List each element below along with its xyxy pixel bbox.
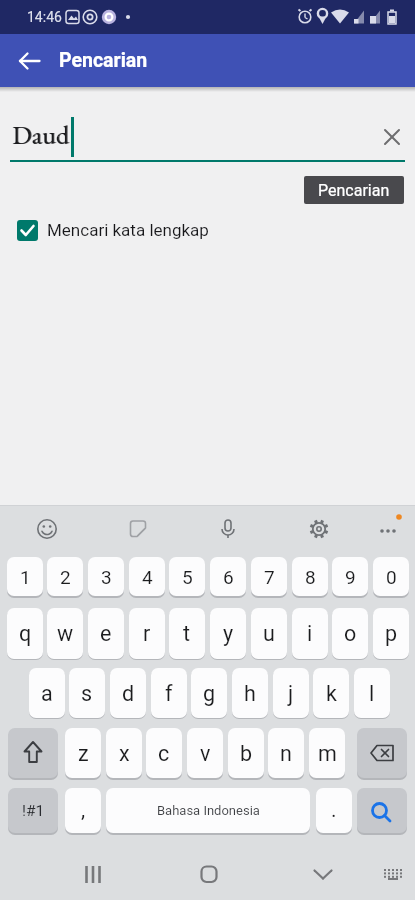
button[interactable]: 0: [373, 557, 409, 596]
button[interactable]: [124, 515, 152, 543]
button[interactable]: a: [29, 668, 65, 718]
button[interactable]: [305, 515, 333, 543]
staticText: w: [57, 621, 74, 646]
button[interactable]: [10, 44, 48, 78]
button[interactable]: x: [106, 728, 142, 778]
button[interactable]: y: [210, 608, 246, 659]
button[interactable]: !#1: [8, 788, 58, 833]
staticText: 8: [305, 566, 316, 588]
button[interactable]: w: [47, 608, 83, 659]
button[interactable]: v: [187, 728, 223, 778]
button[interactable]: n: [268, 728, 304, 778]
button[interactable]: q: [7, 608, 43, 659]
button[interactable]: [357, 788, 407, 833]
staticText: o: [344, 621, 357, 646]
staticText: n: [280, 741, 292, 766]
staticText: Daud: [12, 118, 69, 152]
button[interactable]: b: [228, 728, 264, 778]
staticText: 1: [20, 566, 31, 588]
button[interactable]: 5: [169, 557, 205, 596]
button[interactable]: j: [273, 668, 309, 718]
button[interactable]: 6: [210, 557, 246, 596]
staticText: .: [331, 798, 337, 823]
button[interactable]: r: [129, 608, 165, 659]
staticText: 2: [60, 566, 71, 588]
button[interactable]: [308, 860, 338, 888]
button[interactable]: 9: [332, 557, 368, 596]
button[interactable]: [357, 728, 407, 778]
staticText: 4: [142, 566, 153, 588]
staticText: y: [223, 621, 234, 646]
button[interactable]: Mencari kata lengkap: [10, 214, 250, 248]
button[interactable]: f: [151, 668, 187, 718]
staticText: t: [183, 621, 191, 646]
staticText: k: [326, 681, 337, 706]
staticText: Bahasa Indonesia: [157, 803, 260, 818]
staticText: s: [81, 681, 93, 706]
button[interactable]: o: [332, 608, 368, 659]
staticText: a: [41, 681, 53, 706]
staticText: 7: [264, 566, 275, 588]
button[interactable]: h: [232, 668, 268, 718]
button[interactable]: m: [309, 728, 345, 778]
button[interactable]: 8: [292, 557, 328, 596]
button[interactable]: 4: [129, 557, 165, 596]
staticText: i: [307, 621, 313, 646]
button[interactable]: k: [313, 668, 349, 718]
staticText: 0: [386, 566, 397, 588]
staticText: g: [203, 681, 216, 706]
button[interactable]: g: [191, 668, 227, 718]
button[interactable]: 1: [7, 557, 43, 596]
button[interactable]: i: [292, 608, 328, 659]
staticText: 9: [345, 566, 356, 588]
staticText: Mencari kata lengkap: [47, 220, 209, 240]
button[interactable]: s: [69, 668, 105, 718]
staticText: v: [200, 741, 211, 766]
staticText: !#1: [22, 802, 45, 820]
staticText: u: [263, 621, 275, 646]
staticText: j: [288, 681, 294, 706]
staticText: 5: [182, 566, 193, 588]
staticText: 3: [101, 566, 112, 588]
button[interactable]: z: [65, 728, 101, 778]
button[interactable]: 7: [251, 557, 287, 596]
button[interactable]: [194, 860, 224, 888]
staticText: 14:46: [27, 9, 62, 25]
staticText: Daud: [13, 118, 70, 152]
staticText: q: [19, 621, 32, 646]
staticText: f: [165, 681, 173, 706]
button[interactable]: Bahasa Indonesia: [106, 788, 310, 833]
button[interactable]: 2: [47, 557, 83, 596]
staticText: Pencarian: [59, 49, 148, 72]
staticText: z: [78, 741, 89, 766]
button[interactable]: t: [169, 608, 205, 659]
button[interactable]: ,: [65, 788, 101, 833]
staticText: d: [122, 681, 135, 706]
button[interactable]: 3: [88, 557, 124, 596]
staticText: p: [385, 621, 398, 646]
button[interactable]: [78, 860, 108, 888]
button[interactable]: d: [110, 668, 146, 718]
staticText: h: [244, 681, 256, 706]
staticText: ,: [81, 798, 86, 823]
staticText: Pencarian: [318, 181, 390, 200]
button[interactable]: [33, 515, 61, 543]
staticText: 6: [223, 566, 234, 588]
button[interactable]: .: [316, 788, 352, 833]
button[interactable]: [378, 123, 406, 151]
staticText: l: [369, 681, 375, 706]
button[interactable]: c: [146, 728, 182, 778]
button[interactable]: [10, 112, 405, 162]
button[interactable]: [214, 515, 242, 543]
button[interactable]: p: [373, 608, 409, 659]
button[interactable]: u: [251, 608, 287, 659]
button[interactable]: e: [88, 608, 124, 659]
staticText: m: [318, 741, 337, 766]
staticText: b: [240, 741, 253, 766]
staticText: e: [100, 621, 112, 646]
button[interactable]: [380, 862, 406, 886]
button[interactable]: l: [354, 668, 390, 718]
button[interactable]: [8, 728, 58, 778]
button[interactable]: [374, 515, 402, 543]
staticText: c: [158, 741, 170, 766]
